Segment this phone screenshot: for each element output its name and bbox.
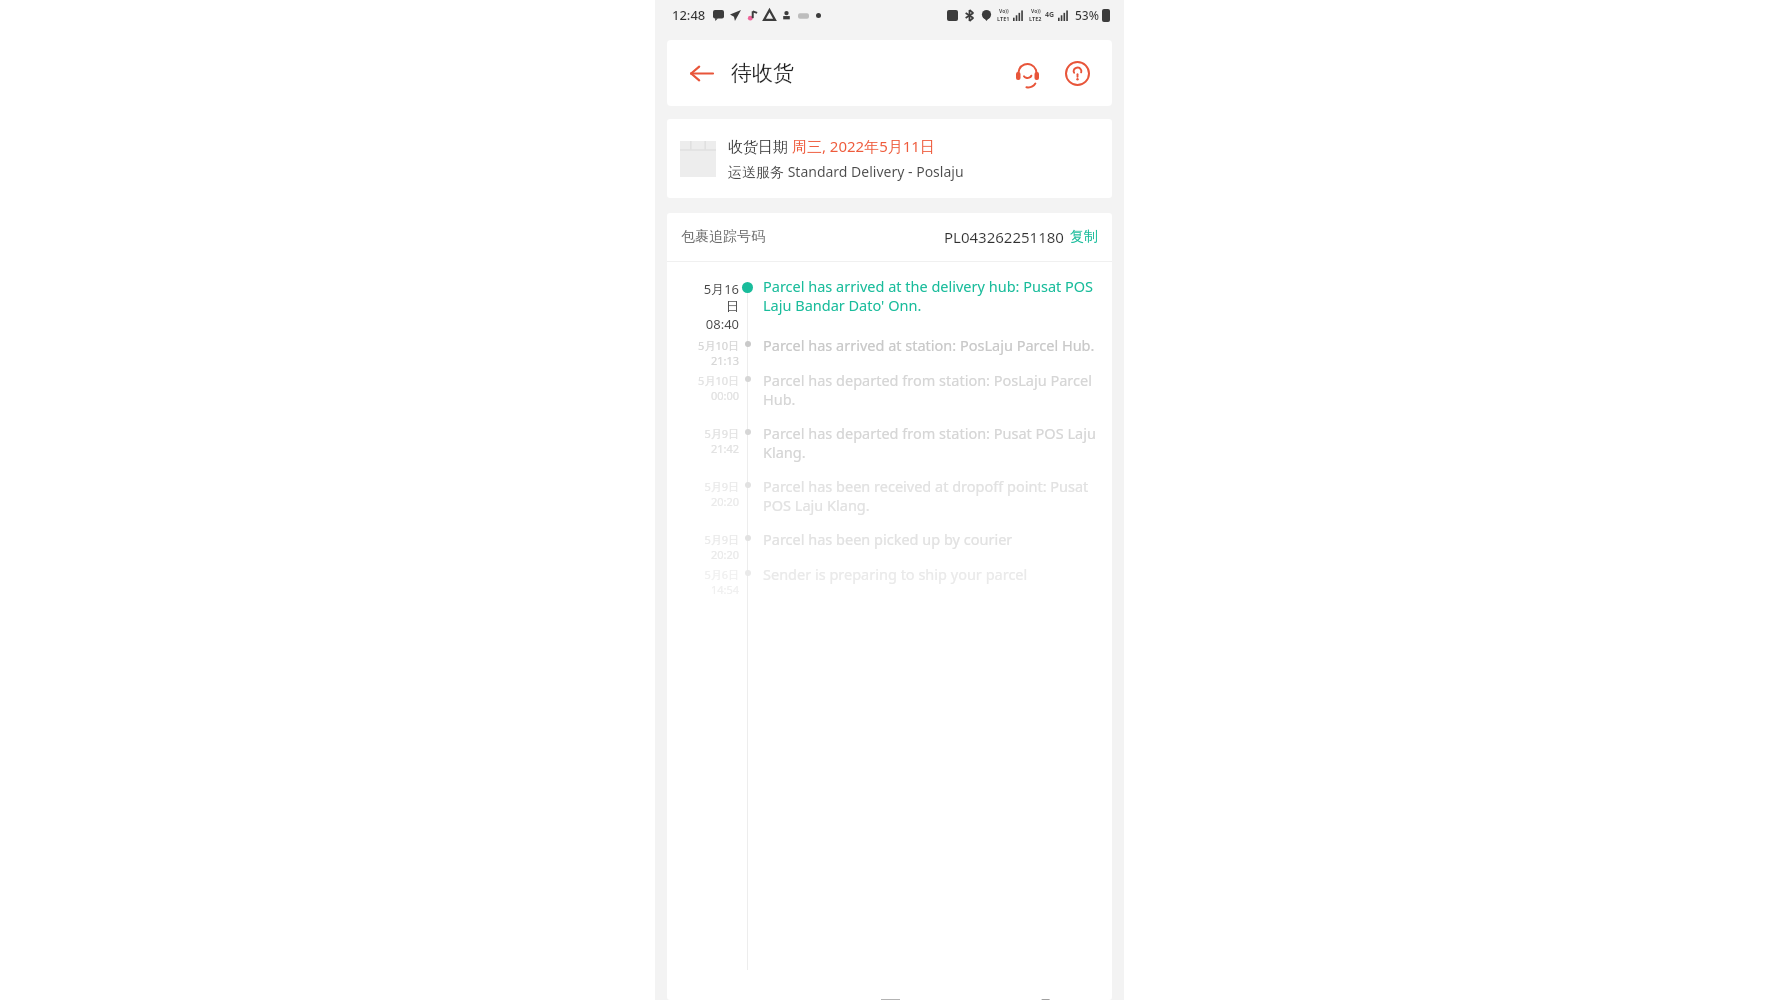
staticText: Parcel has departed from station: PosLaj…: [763, 370, 1098, 409]
button[interactable]: Help: [1058, 54, 1096, 92]
staticText: LTE1: [997, 15, 1010, 22]
staticText: 5月10日: [698, 373, 739, 388]
staticText: Parcel has been received at dropoff poin…: [763, 476, 1098, 515]
staticText: 12:48: [672, 6, 706, 24]
staticText: 5月9日: [704, 426, 739, 441]
button[interactable]: Customer support: [1008, 54, 1046, 92]
staticText: Parcel has arrived at station: PosLaju P…: [763, 335, 1098, 355]
button[interactable]: 5月10日: [667, 333, 1112, 368]
button[interactable]: 5月16 日: [667, 272, 1112, 333]
staticText: Vo)): [999, 8, 1009, 15]
staticText: Parcel has arrived at the delivery hub: …: [763, 276, 1098, 315]
staticText: 00:00: [710, 388, 739, 403]
button[interactable]: 5月9日: [667, 474, 1112, 527]
staticText: 复制: [1070, 228, 1098, 246]
staticText: Parcel has departed from station: Pusat …: [763, 423, 1098, 462]
staticText: 21:13: [710, 353, 739, 368]
staticText: Sender is preparing to ship your parcel: [763, 564, 1098, 584]
button[interactable]: 5月6日: [667, 562, 1112, 597]
staticText: PL043262251180: [944, 227, 1064, 247]
staticText: 08:40: [705, 315, 739, 333]
button[interactable]: 包裹追踪号码: [667, 213, 1112, 261]
staticText: 待收货: [731, 60, 794, 86]
button[interactable]: 收货日期 周三, 2022年5月11日: [667, 119, 1112, 198]
button[interactable]: 5月10日: [667, 368, 1112, 421]
staticText: 收货日期 周三, 2022年5月11日: [728, 136, 935, 156]
button[interactable]: 5月9日: [667, 421, 1112, 474]
staticText: 运送服务 Standard Delivery - Poslaju: [728, 162, 964, 181]
staticText: 包裹追踪号码: [681, 228, 765, 246]
staticText: 5月9日: [704, 532, 739, 547]
staticText: 5月10日: [698, 338, 739, 353]
staticText: 5月6日: [704, 567, 739, 582]
button[interactable]: Back: [681, 53, 721, 93]
staticText: 4G: [1045, 10, 1055, 20]
staticText: 20:20: [710, 547, 739, 562]
staticText: 14:54: [710, 582, 739, 597]
staticText: Vo)): [1031, 8, 1041, 15]
staticText: 20:20: [710, 494, 739, 509]
staticText: 53%: [1075, 7, 1099, 23]
staticText: 21:42: [710, 441, 739, 456]
staticText: 5月16 日: [703, 280, 739, 315]
staticText: LTE2: [1029, 15, 1042, 22]
staticText: Parcel has been picked up by courier: [763, 529, 1098, 549]
button[interactable]: 5月9日: [667, 527, 1112, 562]
staticText: 5月9日: [704, 479, 739, 494]
